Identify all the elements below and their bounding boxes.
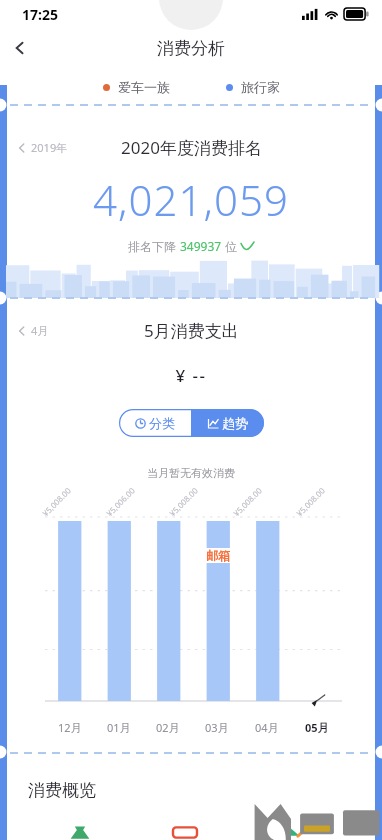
button[interactable]: 爱车一族 [101,77,172,97]
staticText: 05月 [305,720,329,735]
staticText: 02月 [156,720,180,735]
staticText: ¥ -- [0,364,382,387]
staticText: 排名下降 [128,238,180,254]
staticText: 分类 [149,415,175,431]
button[interactable]: 2019年 [18,140,68,155]
button[interactable]: Card [172,825,198,840]
button[interactable]: 4月 [18,323,49,338]
staticText: 2020年度消费排名 [121,136,262,159]
staticText: 趋势 [222,415,248,431]
staticText: 2019年 [31,140,68,155]
staticText: 旅行家 [241,79,280,95]
staticText: 5月消费支出 [144,319,239,342]
staticText: 爱车一族 [118,79,170,95]
staticText: 04月 [255,720,279,735]
button[interactable]: 趋势 [191,409,264,437]
staticText: 当月暂无有效消费 [147,466,235,480]
staticText: 4月 [31,323,49,338]
staticText: ¥5,006.00 [103,484,137,518]
staticText: 01月 [107,720,131,735]
staticText: ¥5,008.00 [230,484,264,518]
staticText: 位 [222,238,241,254]
staticText: ¥5,008.00 [166,484,200,518]
staticText: 17:25 [22,5,58,24]
staticText: 349937 [180,238,222,254]
staticText: 消费分析 [157,38,225,59]
staticText: 4,021,059 [0,171,382,228]
button[interactable]: Insurance [277,825,303,840]
staticText: 03月 [205,720,229,735]
staticText: 邮箱 [206,548,230,563]
staticText: ¥5,008.00 [39,484,73,518]
staticText: ¥5,008.00 [293,484,327,518]
button[interactable]: 分类 [119,409,191,437]
staticText: 消费概览 [28,780,96,801]
button[interactable]: 旅行家 [224,77,282,97]
button[interactable]: Savings [67,825,93,840]
staticText: 12月 [58,720,82,735]
button[interactable]: Back [0,28,40,68]
